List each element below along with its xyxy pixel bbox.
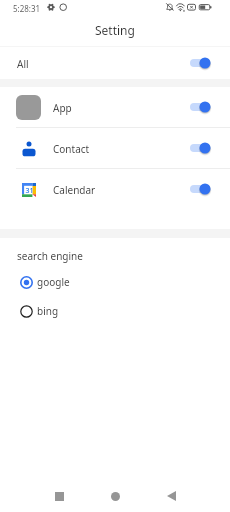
button[interactable]: All xyxy=(0,47,230,79)
staticText: Setting xyxy=(95,22,135,38)
staticText: App xyxy=(53,101,72,115)
button[interactable]: 31 xyxy=(0,169,230,209)
staticText: Calendar xyxy=(53,183,96,197)
button[interactable]: bing xyxy=(0,304,230,318)
staticText: google xyxy=(37,275,70,289)
staticText: 5:28:31 xyxy=(13,3,41,14)
button[interactable]: Recent apps xyxy=(31,477,87,512)
staticText: All xyxy=(17,57,29,71)
staticText: 31 xyxy=(25,186,34,196)
staticText: Contact xyxy=(53,142,90,156)
button[interactable]: Back xyxy=(143,477,199,512)
button[interactable]: google xyxy=(0,275,230,289)
staticText: search engine xyxy=(17,249,83,263)
button[interactable]: App xyxy=(0,87,230,127)
button[interactable]: Home xyxy=(87,477,143,512)
button[interactable]: Contact xyxy=(0,128,230,168)
staticText: bing xyxy=(37,304,59,318)
